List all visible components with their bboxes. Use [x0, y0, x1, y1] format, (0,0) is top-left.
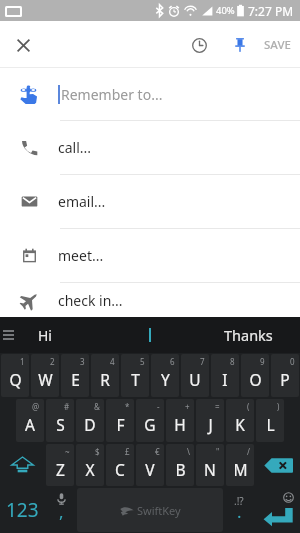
button[interactable]: P [271, 354, 299, 397]
staticText: W [38, 369, 53, 390]
button[interactable]: O [241, 354, 269, 397]
staticText: " [216, 446, 220, 457]
staticText: I [222, 369, 228, 390]
button[interactable]: Comma and voice input [46, 488, 76, 532]
button[interactable]: U [181, 354, 209, 397]
button[interactable]: D [76, 399, 104, 442]
staticText: .!? [234, 494, 244, 508]
staticText: / [247, 446, 250, 457]
staticText: D [84, 414, 96, 435]
button[interactable]: Z [46, 444, 74, 486]
button[interactable]: Set time [181, 27, 217, 63]
button[interactable]: V [136, 444, 164, 486]
staticText: ( [247, 401, 250, 412]
staticText: P [280, 369, 290, 390]
button[interactable]: H [166, 399, 194, 442]
button[interactable]: Pin [222, 27, 258, 63]
staticText: 7 [200, 356, 205, 367]
staticText: G [144, 414, 156, 435]
staticText: 8 [230, 356, 235, 367]
button[interactable]: Shift [1, 444, 44, 486]
staticText: $ [95, 446, 100, 457]
button[interactable]: Menu [0, 317, 16, 353]
button[interactable]: Q [1, 354, 29, 397]
staticText: call... [58, 138, 92, 157]
staticText: Remember to... [61, 85, 163, 104]
staticText: H [174, 414, 186, 435]
staticText: & [94, 401, 100, 412]
button[interactable]: Thanks [196, 317, 300, 353]
button[interactable]: Hi [16, 317, 74, 353]
button[interactable]: F [106, 399, 134, 442]
staticText: Thanks [224, 325, 273, 345]
button[interactable]: L [256, 399, 284, 442]
staticText: \ [187, 446, 190, 457]
staticText: @ [32, 401, 40, 412]
staticText: 6 [170, 356, 175, 367]
button[interactable]: X [76, 444, 104, 486]
staticText: SAVE [264, 37, 291, 53]
staticText: C [115, 459, 125, 480]
button[interactable]: N [196, 444, 224, 486]
staticText: 0 [290, 356, 295, 367]
button[interactable]: J [196, 399, 224, 442]
staticText: F [116, 414, 125, 435]
staticText: J [208, 414, 213, 435]
staticText: check in... [58, 291, 123, 310]
staticText: A [25, 414, 35, 435]
staticText: 1 [20, 356, 25, 367]
staticText: Hi [38, 326, 52, 345]
button[interactable]: K [226, 399, 254, 442]
button[interactable]: Backspace [256, 444, 299, 486]
button[interactable]: B [166, 444, 194, 486]
button[interactable]: C [106, 444, 134, 486]
staticText: X [85, 459, 95, 480]
staticText: Z [56, 459, 65, 480]
staticText: O [249, 369, 262, 390]
staticText: , [59, 500, 64, 523]
button[interactable]: S [46, 399, 74, 442]
staticText: V [145, 459, 155, 480]
button[interactable]: Close [5, 27, 41, 63]
button[interactable]: M [226, 444, 254, 486]
staticText: 3 [80, 356, 85, 367]
button[interactable]: email... [0, 175, 300, 228]
staticText: Y [161, 369, 170, 390]
staticText: M [233, 459, 248, 480]
staticText: - [157, 401, 160, 412]
staticText: E [71, 369, 80, 390]
button[interactable]: SAVE [258, 27, 295, 63]
button[interactable]: E [61, 354, 89, 397]
staticText: £ [125, 446, 130, 457]
button[interactable]: G [136, 399, 164, 442]
button[interactable]: Y [151, 354, 179, 397]
staticText: * [125, 401, 130, 412]
staticText: 5 [140, 356, 145, 367]
button[interactable]: 123 [1, 488, 44, 532]
button[interactable]: Period and punctuation [224, 488, 254, 532]
staticText: B [175, 459, 186, 480]
staticText: L [266, 414, 275, 435]
button[interactable]: R [91, 354, 119, 397]
button[interactable]: I [211, 354, 239, 397]
staticText: T [131, 369, 140, 390]
button[interactable]: A [16, 399, 44, 442]
button[interactable]: meet... [0, 229, 300, 282]
staticText: 9 [260, 356, 265, 367]
staticText: email... [58, 192, 106, 211]
button[interactable]: Space [77, 488, 223, 532]
button[interactable]: W [31, 354, 59, 397]
staticText: € [155, 446, 160, 457]
staticText: R [100, 369, 110, 390]
button[interactable]: Enter [256, 488, 299, 532]
staticText: SwiftKey [137, 503, 181, 518]
button[interactable]: check in... [0, 283, 300, 317]
staticText: 2 [50, 356, 55, 367]
button[interactable]: Remember to... [0, 68, 300, 120]
staticText: U [189, 369, 201, 390]
button[interactable]: T [121, 354, 149, 397]
staticText: S [56, 414, 65, 435]
button[interactable]: call... [0, 121, 300, 174]
staticText: K [235, 414, 245, 435]
staticText: 123 [6, 497, 39, 523]
